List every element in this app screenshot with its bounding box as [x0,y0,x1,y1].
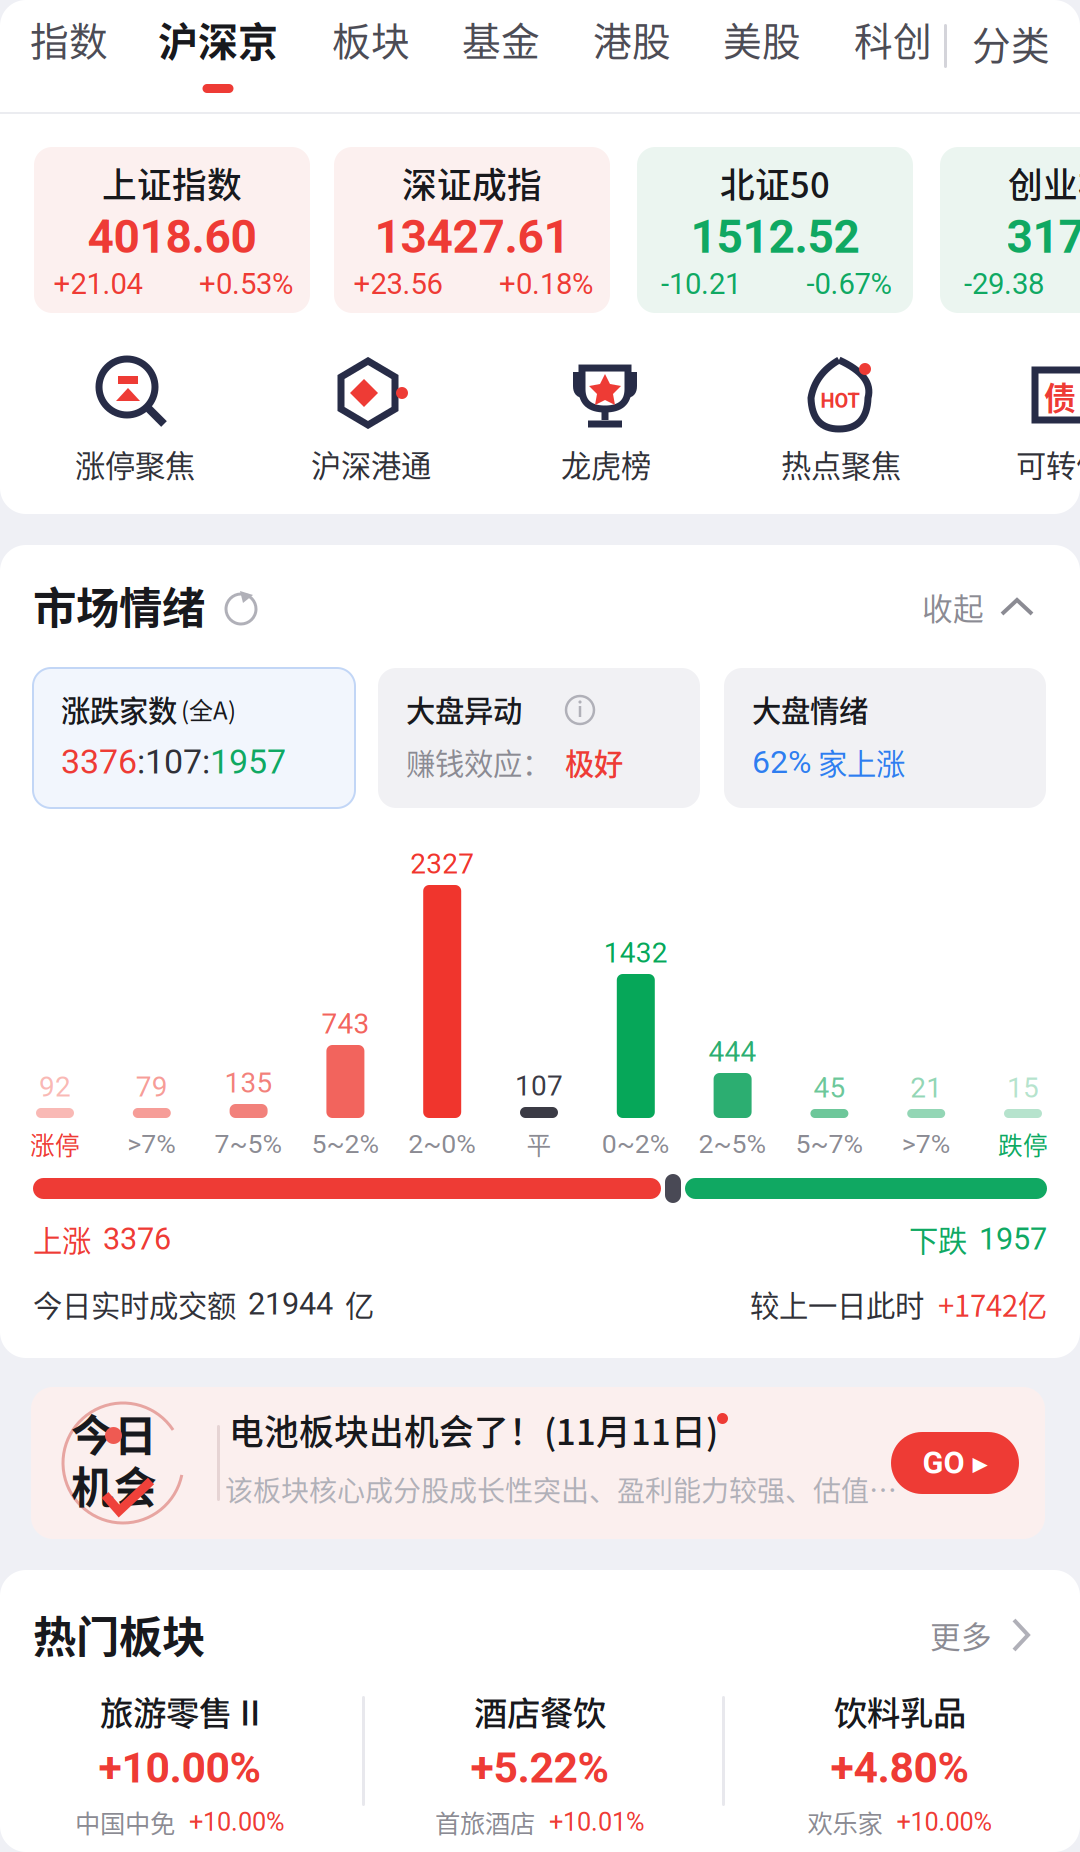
staticText: 今日实时成交额 [33,1283,236,1325]
staticText: 2~5% [699,1128,767,1160]
button[interactable]: 美股 [703,0,821,112]
staticText: :107: [137,742,210,782]
staticText: 上证指数 [102,158,242,208]
staticText: (全A) [181,692,236,726]
button[interactable]: 大盘情绪 [724,668,1046,808]
staticText: 0~2% [602,1128,670,1160]
staticText: 3178.5 [1006,210,1080,264]
staticText: 62% [752,743,811,781]
staticText: 3376 [61,742,137,782]
button[interactable]: 今日 [31,1387,1045,1539]
staticText: 1957 [979,1221,1047,1257]
staticText: 今日 [71,1402,157,1464]
button[interactable]: 大盘异动 [378,668,700,808]
staticText: 5~2% [311,1128,379,1160]
staticText: +4.80% [830,1743,969,1793]
button[interactable]: 北证50 [637,147,913,313]
button[interactable]: 饮料乳品 [730,1688,1070,1852]
button[interactable]: 债 [960,338,1080,484]
staticText: 收起 [922,585,984,629]
staticText: 15 [1007,1072,1039,1104]
staticText: 1512.52 [690,210,859,264]
button[interactable]: 酒店餐饮 [370,1688,710,1852]
button[interactable]: 上证指数 [34,147,310,313]
staticText: 21944 [248,1286,333,1322]
staticText: 板块 [332,11,410,67]
staticText: +1742亿 [938,1283,1047,1325]
staticText: +10.00% [896,1807,992,1837]
staticText: GO ▸ [922,1445,987,1481]
staticText: 沪深京 [158,10,278,68]
staticText: >7% [127,1128,176,1160]
staticText: 港股 [593,11,671,67]
button[interactable]: 收起 [860,585,1046,629]
staticText: 电池板块出机会了！(11月11日) [229,1405,718,1455]
staticText: +21.04 [53,267,142,301]
button[interactable]: 深证成指 [334,147,610,313]
staticText: 跌停 [998,1126,1048,1162]
staticText: 首旅酒店 [435,1804,535,1840]
staticText: 平 [526,1126,551,1162]
button[interactable]: 港股 [573,0,691,112]
staticText: 酒店餐饮 [474,1687,606,1735]
staticText: 涨跌家数 [61,688,177,730]
staticText: 4018.60 [87,210,256,264]
staticText: +5.22% [470,1743,609,1793]
button[interactable]: HOT [740,338,942,484]
button[interactable]: 旅游零售 II [10,1688,350,1852]
staticText: 机会 [71,1454,157,1516]
staticText: +10.00% [189,1807,285,1837]
staticText: 79 [136,1071,168,1103]
staticText: HOT [820,389,859,413]
staticText: 涨停 [30,1126,80,1162]
staticText: 旅游零售 II [100,1687,260,1735]
button[interactable]: 涨停聚焦 [34,338,236,484]
staticText: 444 [709,1036,757,1068]
staticText: +10.01% [549,1807,645,1837]
staticText: 3376 [103,1221,171,1257]
staticText: +23.56 [353,267,442,301]
button[interactable]: 涨跌家数 [33,668,355,808]
staticText: 指数 [30,11,108,67]
staticText: 欢乐家 [807,1804,882,1840]
staticText: 极好 [551,741,623,783]
button[interactable]: 创业板指 [940,147,1080,313]
staticText: +10.00% [98,1743,261,1793]
staticText: 1957 [210,742,286,782]
staticText: 基金 [462,11,540,67]
staticText: 743 [321,1008,369,1040]
staticText: 饮料乳品 [834,1687,966,1735]
button[interactable]: 板块 [312,0,430,112]
staticText: 更多 [930,1613,992,1657]
button[interactable]: 指数 [10,0,128,112]
staticText: 北证50 [720,158,830,208]
staticText: 赚钱效应： [406,741,551,783]
staticText: 2~0% [408,1128,476,1160]
staticText: 1432 [604,937,668,969]
staticText: 135 [225,1067,273,1099]
button[interactable]: 科创 [834,0,952,112]
staticText: 债 [1044,373,1076,419]
staticText: 下跌 [909,1218,967,1260]
staticText: 创业板指 [1008,158,1080,208]
staticText: 21 [910,1072,942,1104]
button[interactable]: 龙虎榜 [505,338,707,484]
button[interactable]: 分类 [972,12,1080,74]
button[interactable]: 基金 [442,0,560,112]
button[interactable]: 沪深京 [138,0,298,112]
staticText: +0.53% [199,267,293,301]
staticText: 市场情绪 [33,574,205,636]
staticText: 龙虎榜 [561,442,651,486]
staticText: 涨停聚焦 [75,442,195,486]
button[interactable]: 更多 [860,1610,1046,1660]
button[interactable]: 沪深港通 [270,338,472,484]
staticText: 较上一日此时 [750,1283,924,1325]
staticText: 92 [39,1071,71,1103]
staticText: 热门板块 [33,1603,205,1665]
staticText: 5~7% [795,1128,863,1160]
staticText: -29.38 [964,267,1044,301]
staticText: >7% [902,1128,951,1160]
staticText: 13427.61 [374,210,569,264]
staticText: 家上涨 [811,741,905,783]
staticText: 美股 [723,11,801,67]
